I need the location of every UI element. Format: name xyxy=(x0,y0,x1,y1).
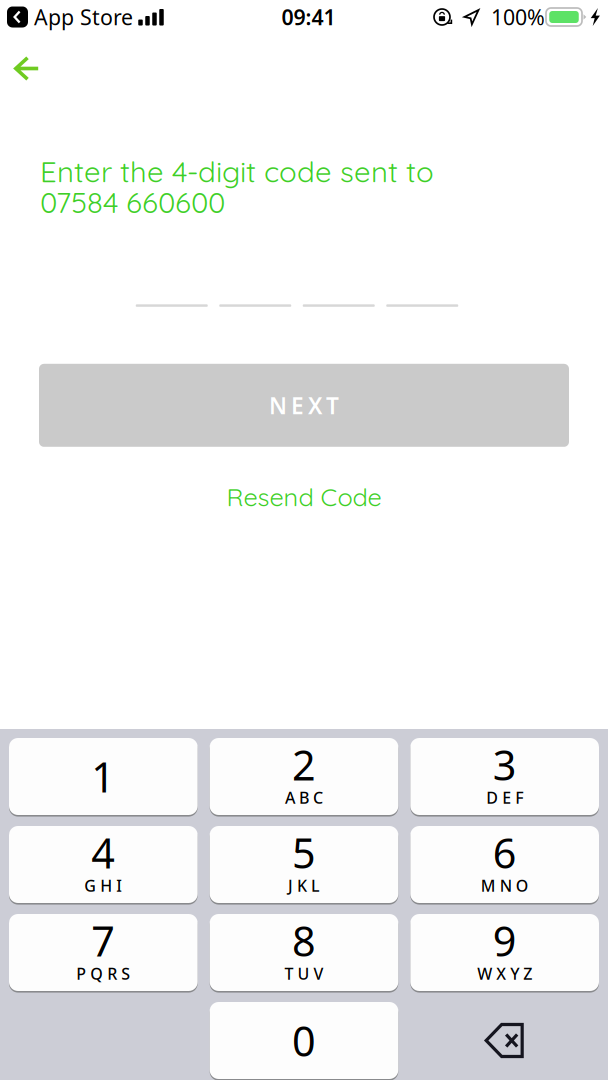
button[interactable]: 7 xyxy=(9,914,198,991)
button[interactable]: N E X T xyxy=(39,364,569,447)
button[interactable]: 9 xyxy=(410,914,599,991)
staticText: 100% xyxy=(491,3,545,31)
button[interactable]: 5 xyxy=(210,826,398,903)
staticText: App Store xyxy=(28,3,133,31)
button[interactable]: Resend Code xyxy=(206,477,401,516)
button[interactable] xyxy=(0,34,58,96)
staticText: M N O xyxy=(481,875,529,896)
staticText: 6 xyxy=(493,825,517,880)
button[interactable]: 2 xyxy=(210,738,398,815)
staticText: 09:41 xyxy=(281,3,335,31)
staticText: W X Y Z xyxy=(477,963,532,984)
staticText: 3 xyxy=(493,737,517,792)
staticText: 2 xyxy=(292,737,316,792)
staticText: G H I xyxy=(84,875,122,896)
staticText: P Q R S xyxy=(76,963,130,984)
staticText: J K L xyxy=(288,875,320,896)
staticText: 1 xyxy=(91,749,115,804)
staticText: T U V xyxy=(284,963,323,984)
button[interactable]: 1 xyxy=(9,738,198,815)
button[interactable] xyxy=(410,1002,599,1079)
staticText: Enter the 4-digit code sent to xyxy=(40,153,434,190)
staticText: 7 xyxy=(91,913,115,968)
staticText: 5 xyxy=(292,825,316,880)
staticText: 07584 660600 xyxy=(40,184,225,220)
staticText: D E F xyxy=(486,787,523,808)
button[interactable]: 0 xyxy=(210,1002,398,1079)
staticText: 0 xyxy=(292,1013,316,1068)
staticText: A B C xyxy=(285,787,323,808)
staticText: 9 xyxy=(493,913,517,968)
staticText: 8 xyxy=(292,913,316,968)
button[interactable]: 4 xyxy=(9,826,198,903)
staticText: 4 xyxy=(91,825,115,880)
button[interactable]: 6 xyxy=(410,826,599,903)
button[interactable]: 3 xyxy=(410,738,599,815)
staticText: Resend Code xyxy=(226,481,381,512)
button[interactable]: 8 xyxy=(210,914,398,991)
staticText: N E X T xyxy=(269,390,339,420)
